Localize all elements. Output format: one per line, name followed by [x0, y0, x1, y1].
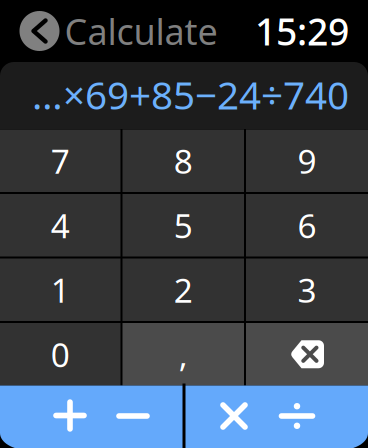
staticText: 7: [51, 139, 70, 183]
staticText: 4: [51, 203, 70, 247]
staticText: 0: [51, 332, 70, 376]
button[interactable]: Calculate: [19, 9, 217, 53]
staticText: 6: [297, 203, 316, 247]
button[interactable]: 4: [0, 194, 120, 256]
staticText: …×69+85−24÷740: [32, 69, 349, 120]
button[interactable]: Add: [52, 397, 88, 433]
button[interactable]: 2: [122, 258, 244, 321]
staticText: 15:29: [255, 6, 349, 56]
staticText: 3: [297, 268, 316, 312]
button[interactable]: Delete: [246, 323, 368, 385]
button[interactable]: 1: [0, 258, 120, 321]
staticText: 8: [174, 139, 193, 183]
button[interactable]: 8: [122, 129, 244, 192]
button[interactable]: 5: [122, 194, 244, 256]
button[interactable]: 0: [0, 323, 120, 385]
staticText: Calculate: [64, 7, 217, 55]
button[interactable]: Divide: [279, 398, 315, 434]
button[interactable]: 6: [246, 194, 368, 256]
button[interactable]: 3: [246, 258, 368, 321]
button[interactable]: 7: [0, 129, 120, 192]
staticText: ,: [179, 332, 188, 376]
staticText: 9: [297, 139, 316, 183]
button[interactable]: Subtract: [115, 398, 151, 434]
button[interactable]: ,: [122, 323, 244, 385]
button[interactable]: Multiply: [216, 398, 252, 434]
staticText: 2: [174, 268, 193, 312]
button[interactable]: 9: [246, 129, 368, 192]
staticText: 1: [51, 268, 70, 312]
staticText: 5: [174, 203, 193, 247]
